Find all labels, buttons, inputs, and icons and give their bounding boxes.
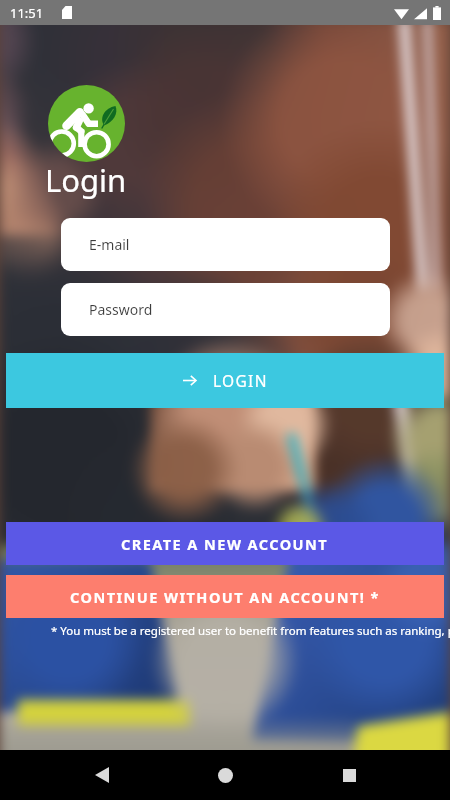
- staticText: Login: [45, 159, 127, 201]
- button[interactable]: Home: [203, 753, 247, 797]
- button[interactable]: Back: [80, 753, 124, 797]
- staticText: Password: [89, 300, 153, 319]
- staticText: LOGIN: [213, 370, 268, 391]
- button[interactable]: CONTINUE WITHOUT AN ACCOUNT! *: [6, 575, 444, 618]
- button[interactable]: Password: [61, 283, 390, 336]
- staticText: CREATE A NEW ACCOUNT: [121, 534, 329, 554]
- staticText: E-mail: [89, 235, 130, 254]
- button[interactable]: CREATE A NEW ACCOUNT: [6, 522, 444, 565]
- staticText: CONTINUE WITHOUT AN ACCOUNT! *: [70, 587, 380, 607]
- button[interactable]: LOGIN: [6, 353, 444, 408]
- button[interactable]: E-mail: [61, 218, 390, 271]
- staticText: * You must be a registered user to benef…: [51, 623, 450, 639]
- button[interactable]: Recent apps: [327, 753, 371, 797]
- staticText: 11:51: [10, 4, 44, 22]
